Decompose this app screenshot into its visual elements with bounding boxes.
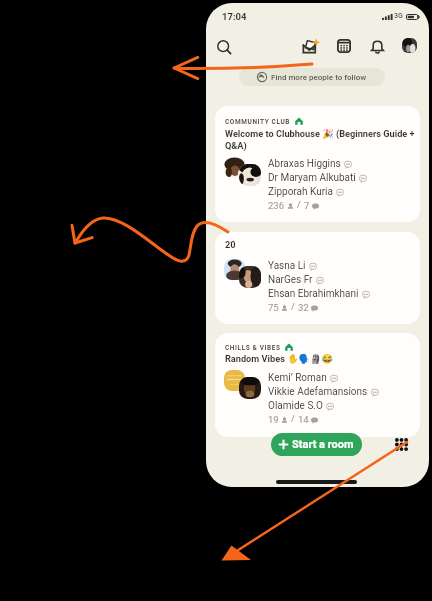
button[interactable]: Upcoming events — [328, 30, 360, 62]
button[interactable]: Invite friends — [294, 30, 326, 62]
staticText: Vikkie Adefamansions — [268, 386, 368, 398]
staticText: Welcome to Clubhouse 🎉 (Beginners Guide … — [225, 128, 415, 139]
staticText: Olamide S.O — [268, 400, 323, 412]
staticText: / — [291, 302, 295, 313]
button[interactable]: Find more people to follow — [239, 68, 385, 86]
staticText: 75 — [268, 302, 279, 313]
staticText: Kemi’ Roman — [268, 372, 327, 384]
button[interactable]: 20 — [215, 232, 420, 324]
staticText: Q&A) — [225, 140, 247, 151]
staticText: 3G — [394, 12, 403, 20]
staticText: / — [297, 200, 301, 211]
staticText: Start a room — [292, 438, 354, 451]
staticText: Random Vibes ✋🗣️🗿😂 — [225, 353, 333, 364]
button[interactable]: Start a room — [271, 433, 362, 456]
staticText: Yasna Li — [268, 260, 306, 272]
button[interactable]: CHILLS & VIBES — [215, 333, 420, 437]
staticText: Find more people to follow — [271, 73, 367, 82]
staticText: 17:04 — [222, 11, 247, 22]
staticText: Abraxas Higgins — [268, 158, 341, 170]
staticText: 14 — [298, 414, 309, 425]
button[interactable]: COMMUNITY CLUB — [215, 106, 420, 222]
button[interactable]: Your profile — [393, 29, 425, 61]
button[interactable]: Search — [206, 29, 242, 65]
button[interactable]: Notifications — [361, 30, 393, 62]
staticText: / — [291, 414, 295, 425]
staticText: 7 — [304, 200, 310, 211]
staticText: NarGes Fr — [268, 274, 313, 286]
staticText: COMMUNITY CLUB — [225, 118, 291, 126]
staticText: 32 — [298, 302, 309, 313]
staticText: 19 — [268, 414, 279, 425]
button[interactable]: Hallway — [388, 431, 414, 457]
staticText: 20 — [225, 239, 236, 250]
staticText: 236 — [268, 200, 285, 211]
staticText: Zipporah Kuria — [268, 186, 333, 198]
staticText: Ehsan Ebrahimkhani — [268, 288, 359, 300]
staticText: Dr Maryam Alkubati — [268, 172, 356, 184]
staticText: CHILLS & VIBES — [225, 344, 281, 352]
